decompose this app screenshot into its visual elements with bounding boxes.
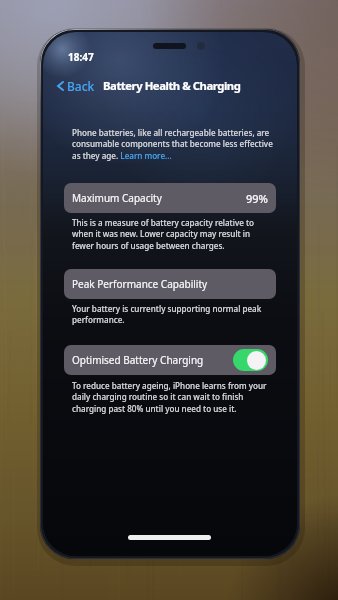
staticText: Phone batteries, like all rechargeable b… <box>72 127 276 162</box>
button[interactable]: Optimised Battery Charging <box>64 345 276 375</box>
button[interactable]: Maximum Capacity <box>64 183 276 213</box>
staticText: Back <box>67 78 95 94</box>
button[interactable]: Optimised Battery Charging toggle <box>233 349 268 371</box>
staticText: 99% <box>246 191 268 206</box>
button[interactable]: Back <box>55 75 97 97</box>
staticText: Your battery is currently supporting nor… <box>72 303 276 326</box>
staticText: Peak Performance Capability <box>72 277 208 291</box>
staticText: Battery Health & Charging <box>103 78 241 93</box>
staticText: Optimised Battery Charging <box>72 353 204 367</box>
staticText: This is a measure of battery capacity re… <box>72 217 276 252</box>
staticText: 18:47 <box>68 50 94 64</box>
staticText: Maximum Capacity <box>72 191 162 205</box>
button[interactable]: Peak Performance Capability <box>64 269 276 299</box>
staticText: To reduce battery ageing, iPhone learns … <box>72 380 276 415</box>
